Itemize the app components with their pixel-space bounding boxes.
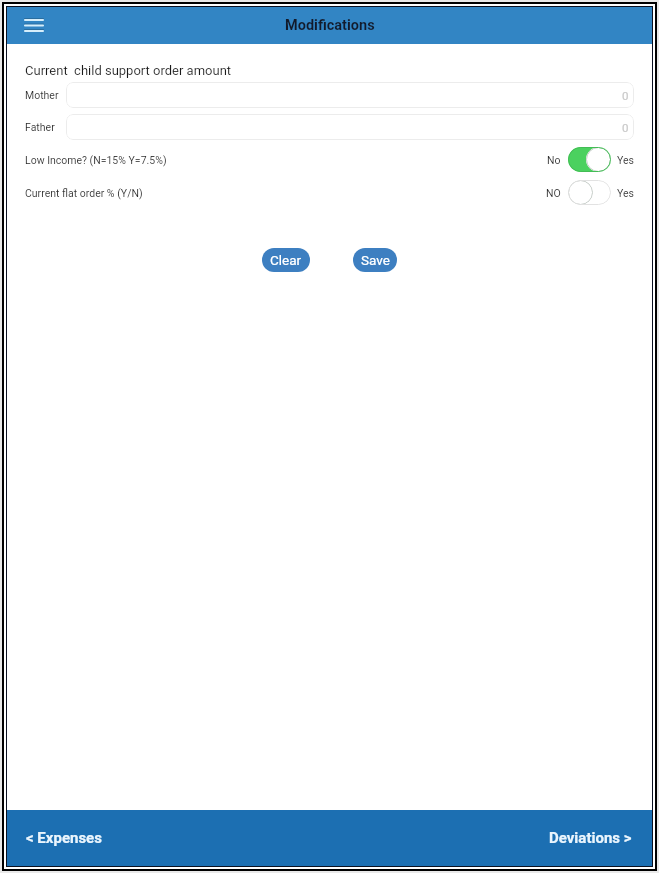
button[interactable]: Save bbox=[353, 248, 397, 272]
staticText: Father bbox=[25, 121, 55, 133]
staticText: No bbox=[547, 154, 561, 166]
staticText: Low Income? (N=15% Y=7.5%) bbox=[25, 154, 167, 166]
button[interactable] bbox=[568, 147, 611, 172]
staticText: 0 bbox=[622, 89, 629, 102]
staticText: Current flat order % (Y/N) bbox=[25, 187, 143, 199]
staticText: NO bbox=[546, 187, 561, 199]
button[interactable]: 0 bbox=[66, 114, 634, 140]
button[interactable] bbox=[24, 18, 44, 33]
staticText: Deviations > bbox=[549, 829, 632, 847]
staticText: Clear bbox=[270, 252, 302, 268]
staticText: 0 bbox=[622, 121, 629, 134]
button[interactable]: < Expenses bbox=[7, 829, 102, 847]
staticText: Save bbox=[361, 252, 390, 268]
staticText: < Expenses bbox=[26, 829, 102, 847]
button[interactable]: Deviations > bbox=[549, 829, 652, 847]
staticText: Mother bbox=[25, 89, 59, 101]
staticText: Current child support order amount bbox=[25, 63, 232, 78]
staticText: Modifications bbox=[285, 17, 375, 34]
button[interactable] bbox=[568, 180, 611, 205]
staticText: Yes bbox=[617, 187, 634, 199]
staticText: Yes bbox=[617, 154, 634, 166]
button[interactable]: 0 bbox=[66, 82, 634, 108]
button[interactable]: Clear bbox=[262, 248, 310, 272]
